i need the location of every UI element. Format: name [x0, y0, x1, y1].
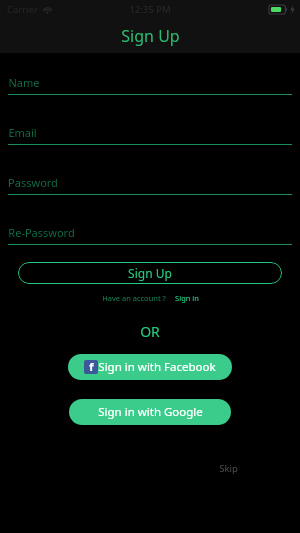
staticText: Sign in with Facebook — [98, 359, 216, 375]
staticText: Password — [8, 175, 58, 190]
button[interactable]: Sign in — [175, 293, 199, 303]
button[interactable]: Sign Up — [18, 262, 282, 284]
staticText: 12:35 PM — [129, 3, 171, 16]
button[interactable]: Email — [0, 125, 300, 145]
staticText: Sign in with Google — [98, 404, 203, 420]
staticText: Re-Password — [8, 225, 75, 240]
staticText: Name — [8, 75, 40, 90]
button[interactable]: Skip — [219, 462, 238, 475]
button[interactable]: Facebook — [68, 354, 232, 380]
staticText: Sign Up — [128, 265, 172, 281]
staticText: Email — [8, 125, 37, 140]
staticText: Skip — [219, 462, 238, 475]
staticText: Have an account ? — [102, 293, 166, 303]
button[interactable]: Name — [0, 75, 300, 95]
button[interactable]: Password — [0, 175, 300, 195]
staticText: Sign in — [175, 293, 199, 303]
button[interactable]: Have an account ? — [102, 293, 166, 303]
button[interactable]: Sign in with Google — [69, 399, 231, 425]
staticText: f — [89, 360, 94, 373]
button[interactable]: Re-Password — [0, 225, 300, 245]
staticText: OR — [140, 322, 160, 341]
other: Facebook — [84, 360, 98, 374]
staticText: Sign Up — [121, 25, 180, 47]
staticText: Carrier — [7, 3, 38, 16]
